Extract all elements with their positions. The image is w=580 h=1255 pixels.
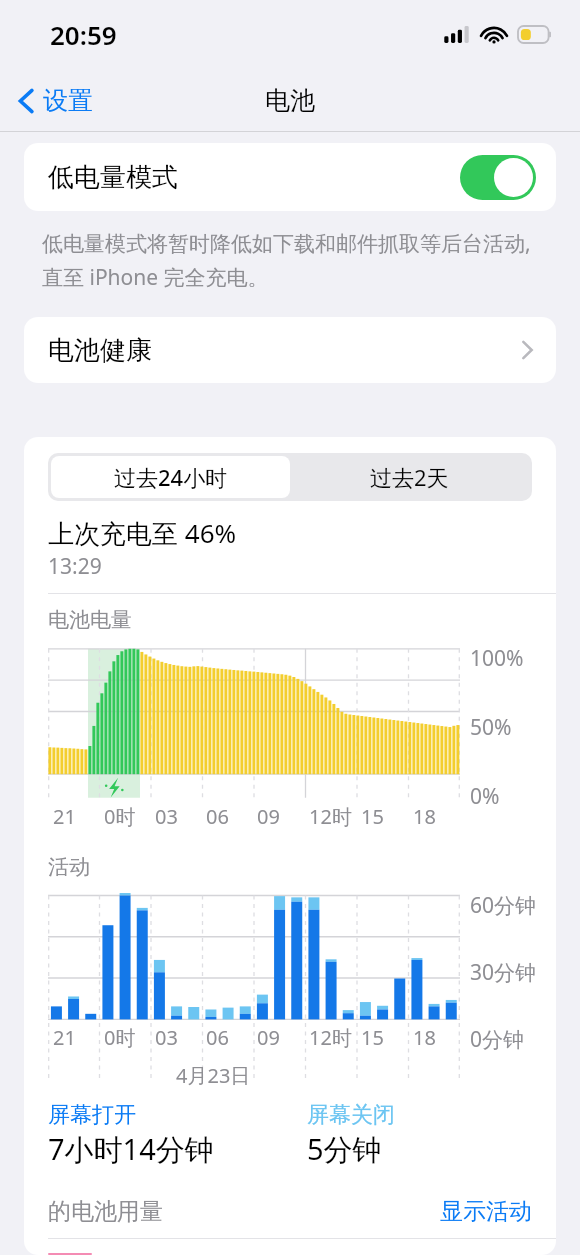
staticText: 20:59 <box>50 17 117 52</box>
staticText: 100% <box>470 644 524 673</box>
staticText: 7小时14分钟 <box>48 1129 214 1169</box>
button[interactable]: 设置 <box>12 77 99 124</box>
staticText: 活动 <box>48 854 90 880</box>
staticText: 4月23日 <box>176 1062 251 1089</box>
staticText: 21 <box>53 1024 76 1051</box>
staticText: 上次充电至 46% <box>48 515 237 551</box>
staticText: 12时 <box>309 803 352 830</box>
staticText: 06 <box>206 803 229 830</box>
staticText: 13:29 <box>48 552 102 581</box>
staticText: 屏幕关闭 <box>307 1101 395 1129</box>
staticText: 过去24小时 <box>114 462 228 492</box>
button[interactable]: 显示活动 <box>438 1195 534 1228</box>
staticText: 60分钟 <box>470 891 537 920</box>
staticText: 15 <box>361 803 384 830</box>
staticText: 0时 <box>104 803 136 830</box>
staticText: 50% <box>470 713 512 742</box>
staticText: 18 <box>413 1024 436 1051</box>
staticText: 0% <box>470 782 500 811</box>
staticText: 30分钟 <box>470 958 537 987</box>
staticText: 的电池用量 <box>48 1197 163 1226</box>
staticText: 03 <box>155 803 178 830</box>
staticText: 09 <box>257 1024 280 1051</box>
staticText: 0时 <box>104 1024 136 1051</box>
other: More <box>521 339 534 361</box>
staticText: 03 <box>155 1024 178 1051</box>
staticText: 15 <box>361 1024 384 1051</box>
staticText: 06 <box>206 1024 229 1051</box>
staticText: 低电量模式 <box>48 161 178 194</box>
button[interactable]: 过去2天 <box>290 456 529 498</box>
staticText: 12时 <box>309 1024 352 1051</box>
staticText: 5分钟 <box>307 1129 382 1169</box>
staticText: 设置 <box>43 85 93 116</box>
staticText: 过去2天 <box>370 462 449 492</box>
staticText: 电池健康 <box>48 334 152 367</box>
staticText: 电池 <box>265 85 315 116</box>
staticText: 21 <box>53 803 76 830</box>
staticText: 屏幕打开 <box>48 1101 136 1129</box>
staticText: 电池电量 <box>48 607 132 633</box>
staticText: 09 <box>257 803 280 830</box>
button[interactable]: 低电量模式 <box>24 143 556 211</box>
staticText: 低电量模式将暂时降低如下载和邮件抓取等后台活动, 直至 iPhone 完全充电。 <box>42 229 531 291</box>
button[interactable]: 哔哩哔哩 <box>48 1253 556 1255</box>
staticText: 显示活动 <box>440 1197 532 1226</box>
button[interactable]: 电池健康 <box>24 317 556 383</box>
button[interactable]: 过去24小时 <box>51 456 290 498</box>
staticText: 18 <box>413 803 436 830</box>
staticText: 0分钟 <box>470 1025 525 1054</box>
